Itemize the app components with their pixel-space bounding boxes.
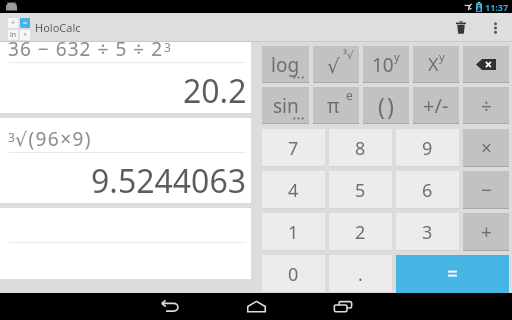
staticText: log bbox=[271, 52, 300, 78]
button[interactable]: Back bbox=[140, 293, 200, 320]
staticText: e bbox=[346, 87, 353, 103]
button[interactable]: 36 − 632 ÷ 5 ÷ 2 bbox=[0, 42, 251, 113]
staticText: − bbox=[481, 177, 492, 203]
button[interactable]: 10 bbox=[363, 46, 409, 83]
staticText: sin bbox=[273, 93, 299, 119]
staticText: 7 bbox=[288, 136, 299, 161]
staticText: 0 bbox=[288, 262, 299, 287]
staticText: × bbox=[481, 135, 492, 161]
staticText: 3 bbox=[8, 129, 15, 145]
staticText: = bbox=[23, 18, 28, 28]
button[interactable]: − bbox=[463, 171, 509, 209]
button[interactable]: Backspace bbox=[463, 46, 509, 83]
staticText: () bbox=[378, 90, 396, 121]
staticText: 11:37 bbox=[485, 1, 509, 13]
button[interactable]: + bbox=[463, 213, 509, 251]
button[interactable]: +/- bbox=[413, 87, 459, 124]
button[interactable]: 3 bbox=[396, 213, 459, 251]
staticText: ³√ bbox=[343, 47, 354, 62]
staticText: 8 bbox=[355, 136, 366, 161]
staticText: 4 bbox=[288, 178, 299, 203]
staticText: 9 bbox=[422, 136, 433, 161]
staticText: . bbox=[358, 262, 363, 287]
button[interactable]: 2 bbox=[329, 213, 392, 251]
staticText: 3 bbox=[164, 42, 171, 55]
button[interactable]: Home bbox=[226, 293, 286, 320]
button[interactable]: 5 bbox=[329, 171, 392, 209]
staticText: HoloCalc bbox=[35, 20, 81, 35]
staticText: ÷ bbox=[481, 93, 492, 119]
button[interactable]: 7 bbox=[262, 129, 325, 167]
staticText: π bbox=[327, 93, 340, 119]
staticText: 3 bbox=[422, 220, 433, 245]
button[interactable]: () bbox=[363, 87, 409, 124]
staticText: + bbox=[481, 219, 492, 245]
staticText: √ bbox=[327, 54, 340, 77]
button[interactable]: . bbox=[329, 255, 392, 293]
staticText: = bbox=[447, 261, 458, 287]
button[interactable]: X bbox=[413, 46, 459, 83]
staticText: 1 bbox=[288, 220, 299, 245]
staticText: 9.5244063 bbox=[91, 159, 247, 203]
staticText: 5 bbox=[355, 178, 366, 203]
button[interactable]: 4 bbox=[262, 171, 325, 209]
staticText: 10 bbox=[372, 52, 394, 78]
button[interactable]: = bbox=[396, 255, 509, 293]
button[interactable]: 8 bbox=[329, 129, 392, 167]
staticText: 36 − 632 ÷ 5 ÷ 2 bbox=[8, 42, 164, 62]
button[interactable]: × bbox=[463, 129, 509, 167]
button[interactable]: 0 bbox=[262, 255, 325, 293]
button[interactable]: 9 bbox=[396, 129, 459, 167]
staticText: 6 bbox=[422, 178, 433, 203]
staticText: ln bbox=[10, 30, 17, 40]
button[interactable]: sin bbox=[262, 87, 309, 124]
button[interactable]: 3 bbox=[0, 118, 251, 203]
staticText: X bbox=[428, 52, 439, 77]
staticText: y bbox=[394, 49, 400, 64]
staticText: 2 bbox=[355, 220, 366, 245]
button[interactable]: 1 bbox=[262, 213, 325, 251]
button[interactable]: ÷ bbox=[463, 87, 509, 124]
staticText: 20.2 bbox=[183, 69, 247, 113]
staticText: y bbox=[439, 49, 445, 64]
button[interactable]: 6 bbox=[396, 171, 459, 209]
button[interactable]: More options bbox=[484, 13, 506, 42]
staticText: + bbox=[11, 18, 16, 28]
staticText: + bbox=[23, 30, 28, 40]
button[interactable]: √ bbox=[313, 46, 359, 83]
staticText: √(96×9) bbox=[15, 126, 92, 152]
button[interactable]: Delete history bbox=[442, 13, 480, 42]
staticText: +/- bbox=[423, 92, 449, 119]
button[interactable]: Recent apps bbox=[313, 293, 373, 320]
button[interactable]: log bbox=[262, 46, 309, 83]
button[interactable]: π bbox=[313, 87, 359, 124]
